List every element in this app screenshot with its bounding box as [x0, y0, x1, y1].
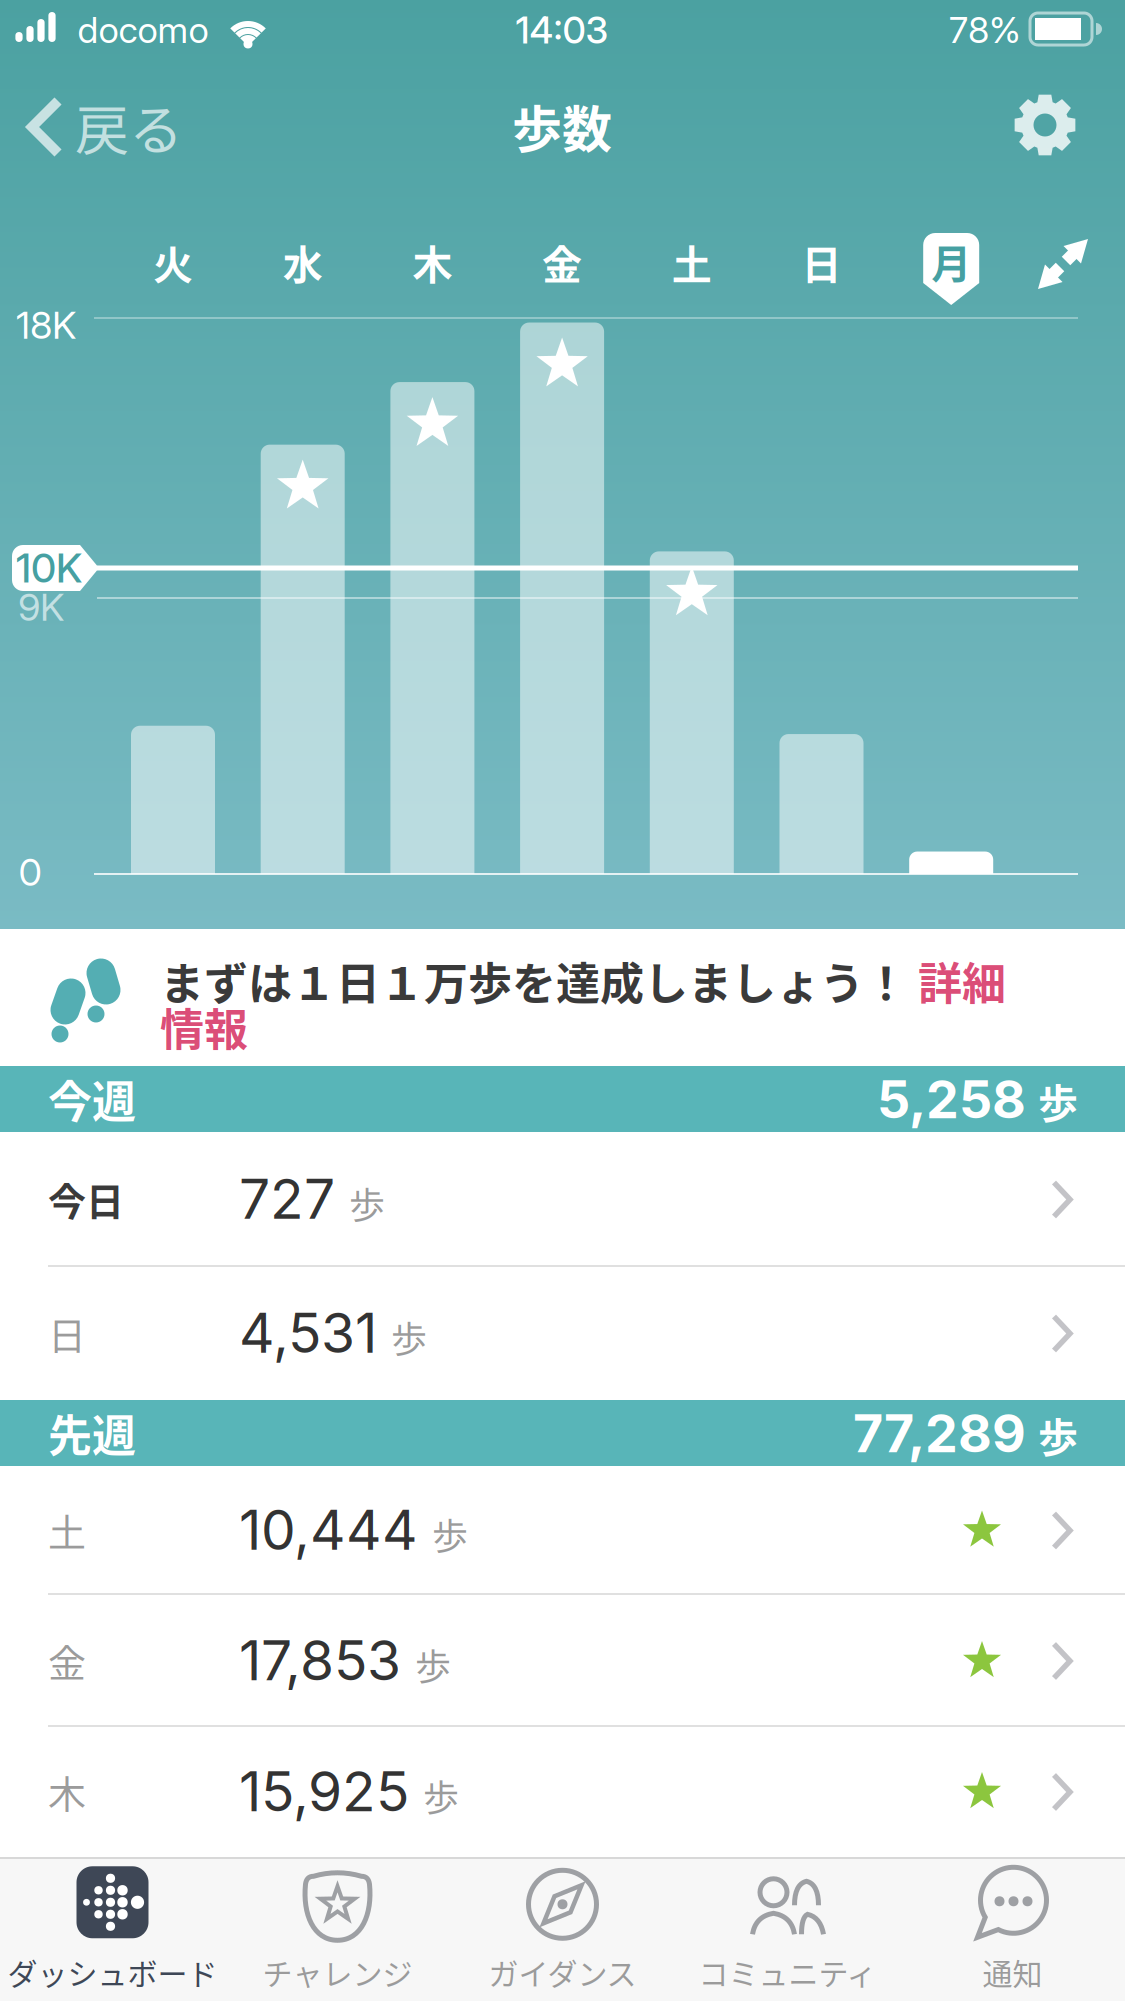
staticText: 金: [48, 1633, 86, 1688]
staticText: ガイダンス: [488, 1950, 636, 1994]
staticText: 歩: [432, 1508, 468, 1560]
staticText: 火: [153, 233, 193, 291]
staticText: コミュニティ: [698, 1950, 876, 1994]
button[interactable]: コミュニティ: [675, 1857, 900, 2001]
staticText: 先週: [48, 1401, 136, 1465]
button[interactable]: 詳細情報: [160, 949, 1090, 1061]
staticText: 金: [542, 233, 582, 291]
button[interactable]: 拡大: [1032, 233, 1094, 295]
staticText: 727: [239, 1165, 335, 1232]
staticText: 10K: [16, 544, 82, 592]
button[interactable]: 日: [0, 1267, 1125, 1400]
staticText: 5,258: [877, 1068, 1026, 1131]
staticText: 日: [801, 233, 841, 291]
staticText: 10,444: [239, 1496, 418, 1563]
staticText: 15,925: [239, 1758, 409, 1825]
staticText: 17,853: [239, 1627, 401, 1694]
staticText: ダッシュボード: [7, 1950, 217, 1994]
staticText: 今日: [48, 1171, 124, 1226]
button[interactable]: 戻る: [29, 88, 183, 166]
staticText: 土: [672, 233, 712, 291]
staticText: 78%: [949, 8, 1021, 52]
button[interactable]: 土: [0, 1466, 1125, 1595]
staticText: 77,289: [853, 1402, 1026, 1465]
staticText: 今週: [48, 1067, 136, 1131]
button[interactable]: 今日: [0, 1132, 1125, 1267]
staticText: 歩: [1038, 1406, 1078, 1464]
staticText: 日: [48, 1305, 86, 1360]
staticText: 木: [48, 1764, 86, 1819]
button[interactable]: 木: [0, 1727, 1125, 1857]
staticText: docomo: [77, 8, 208, 52]
staticText: チャレンジ: [262, 1950, 412, 1994]
staticText: 歩数: [512, 90, 612, 162]
staticText: 月: [931, 232, 971, 290]
staticText: 歩: [349, 1177, 385, 1229]
staticText: 通知: [982, 1950, 1042, 1994]
button[interactable]: ダッシュボード: [0, 1857, 225, 2001]
button[interactable]: 通知: [900, 1857, 1125, 2001]
staticText: まずは１日１万歩を達成しましょう！: [160, 949, 908, 1013]
staticText: 歩: [415, 1639, 451, 1691]
staticText: 歩: [423, 1770, 459, 1822]
button[interactable]: 設定: [1013, 93, 1077, 157]
button[interactable]: 金: [0, 1595, 1125, 1727]
staticText: 18K: [16, 302, 76, 348]
staticText: 4,531: [239, 1299, 377, 1366]
staticText: 14:03: [515, 8, 608, 52]
button[interactable]: ガイダンス: [450, 1857, 675, 2001]
staticText: 木: [412, 233, 452, 291]
staticText: 歩: [391, 1311, 427, 1363]
staticText: 戻る: [75, 88, 183, 166]
staticText: 情報: [160, 995, 248, 1059]
staticText: 土: [48, 1502, 86, 1557]
staticText: 歩: [1038, 1072, 1078, 1130]
button[interactable]: チャレンジ: [225, 1857, 450, 2001]
staticText: 0: [18, 849, 41, 895]
staticText: 詳細: [908, 949, 1006, 1013]
staticText: 9K: [18, 584, 64, 630]
staticText: 水: [283, 233, 323, 291]
